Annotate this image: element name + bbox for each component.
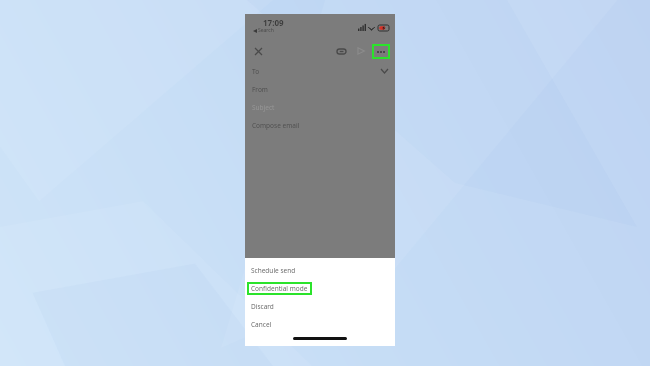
button[interactable]: To [245,62,395,80]
staticText: To [252,67,260,76]
staticText: Search [258,27,274,34]
button[interactable]: Discard [245,297,395,315]
button[interactable]: Confidential mode [245,279,395,297]
staticText: Schedule send [251,266,296,275]
staticText: Confidential mode [251,284,308,293]
button[interactable]: Close [250,43,266,59]
button[interactable]: Expand recipients [379,66,389,76]
button[interactable]: Schedule send [245,261,395,279]
staticText: From [252,85,268,94]
staticText: Subject [252,103,275,112]
button[interactable]: Attach file [333,43,349,59]
staticText: Discard [251,302,274,311]
staticText: 17:09 [263,17,284,28]
button[interactable]: Compose email [245,116,395,134]
button[interactable]: Cancel [245,315,395,333]
button[interactable]: Send [353,43,369,59]
button[interactable]: More options [372,44,390,59]
staticText: Compose email [252,121,300,130]
staticText: Cancel [251,320,272,329]
